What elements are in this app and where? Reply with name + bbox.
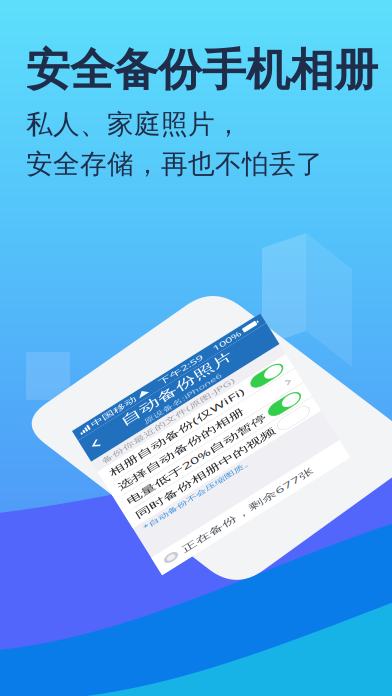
staticText: 安全存储，再也不怕丢了 xyxy=(26,148,323,181)
staticText: 原设备名:iPhone6 xyxy=(142,281,281,304)
staticText: 私人、家庭照片， xyxy=(26,108,242,141)
staticText: 电量低于20%自动暂停 xyxy=(55,441,304,474)
staticText: 正在备份，剩余677张 xyxy=(88,639,322,671)
staticText: 同时备份相册中的视频 xyxy=(55,489,305,520)
staticText: 自动备份照片 xyxy=(112,239,310,280)
staticText: *自动备份不会压缩图质。 xyxy=(55,532,252,555)
staticText: 备份你最近的文件(原图-JPG) xyxy=(55,311,293,336)
staticText: 选择自动备份的相册 xyxy=(55,395,280,426)
staticText: 安全备份手机相册 xyxy=(26,43,378,97)
staticText: 相册自动备份(仅WiFi) xyxy=(55,346,297,380)
